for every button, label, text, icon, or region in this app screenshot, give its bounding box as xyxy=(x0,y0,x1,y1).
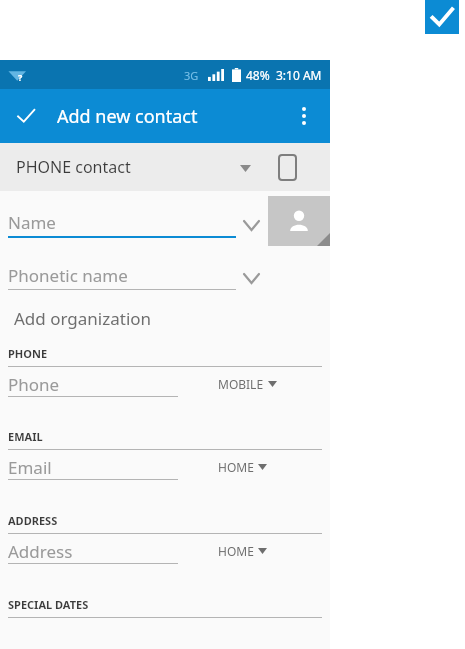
staticText: Address xyxy=(8,540,73,563)
button[interactable]: Phone xyxy=(0,367,330,401)
staticText: HOME xyxy=(218,543,254,559)
button[interactable]: Address xyxy=(0,534,330,568)
button[interactable]: Add photo xyxy=(268,196,330,246)
button[interactable]: Confirm xyxy=(425,0,459,34)
staticText: Add new contact xyxy=(57,104,198,129)
button[interactable]: HOME xyxy=(218,540,267,562)
button[interactable]: HOME xyxy=(218,456,267,478)
staticText: PHONE contact xyxy=(16,156,131,178)
staticText: ? xyxy=(18,71,23,83)
staticText: Email xyxy=(8,456,52,479)
staticText: Phonetic name xyxy=(8,264,128,287)
button[interactable]: Save contact xyxy=(6,96,46,136)
staticText: MOBILE xyxy=(218,376,264,392)
button[interactable]: More options xyxy=(284,96,324,136)
staticText: EMAIL xyxy=(8,429,43,444)
button[interactable] xyxy=(8,260,236,290)
button[interactable]: PHONE contact xyxy=(0,143,330,191)
staticText: SPECIAL DATES xyxy=(8,597,89,612)
staticText: Name xyxy=(8,211,56,234)
staticText: 3:10 AM xyxy=(276,67,322,83)
button[interactable]: MOBILE xyxy=(218,373,277,395)
staticText: PHONE xyxy=(8,346,48,361)
button[interactable]: Expand xyxy=(236,210,266,240)
staticText: Add organization xyxy=(14,307,152,330)
staticText: HOME xyxy=(218,459,254,475)
button[interactable]: Expand xyxy=(236,263,266,293)
staticText: 3G xyxy=(184,68,199,83)
staticText: 48% xyxy=(246,67,270,83)
other: Phone storage xyxy=(279,155,296,180)
staticText: ADDRESS xyxy=(8,513,58,528)
button[interactable]: Add organization xyxy=(0,301,330,335)
button[interactable] xyxy=(8,207,236,237)
staticText: Phone xyxy=(8,373,60,396)
button[interactable]: Email xyxy=(0,450,330,484)
